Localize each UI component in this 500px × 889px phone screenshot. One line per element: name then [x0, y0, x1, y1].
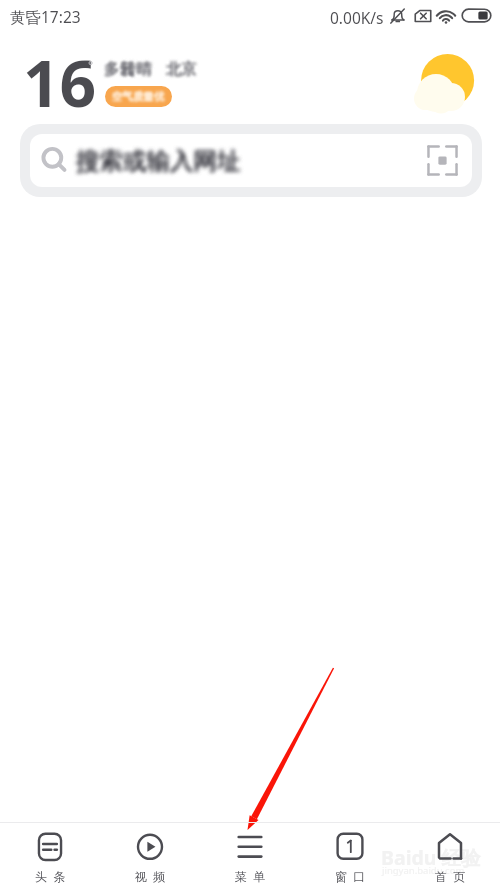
staticText: 头条 — [35, 869, 72, 884]
staticText: 空气质量优 — [112, 90, 165, 103]
staticText: 窗口 — [335, 869, 372, 884]
staticText: 多云 — [104, 59, 135, 79]
staticText: 北京 — [166, 59, 197, 79]
staticText: 空气质量优 — [112, 90, 165, 103]
staticText: 黄昏17:23 — [10, 6, 81, 27]
staticText: 搜索或输入网址 — [76, 146, 241, 176]
staticText: 北京 — [166, 59, 197, 79]
staticText: jingyan.baidu.com — [382, 864, 465, 877]
button[interactable]: 搜索或输入网址 — [30, 134, 472, 187]
button[interactable]: 视频 — [100, 823, 200, 889]
button[interactable]: 窗口 — [300, 823, 400, 889]
staticText: 16 — [23, 39, 97, 126]
staticText: 0.00K/s — [330, 7, 384, 28]
staticText: 菜单 — [235, 869, 272, 884]
button[interactable]: 空气质量优 — [105, 86, 172, 107]
staticText: Baidu 经验 — [381, 844, 481, 871]
staticText: 搜索或输入网址 — [76, 146, 241, 176]
other: Scan QR code — [426, 144, 459, 177]
button[interactable]: 菜单 — [200, 823, 300, 889]
staticText: 首页 — [435, 869, 472, 884]
staticText: 多云 — [104, 59, 135, 79]
other: Weather — [414, 48, 486, 120]
staticText: 转晴 — [121, 59, 152, 79]
staticText: ° — [88, 57, 94, 73]
button[interactable]: 首页 — [400, 823, 500, 889]
button[interactable]: 头条 — [0, 823, 100, 889]
staticText: 视频 — [135, 869, 172, 884]
staticText: 转晴 — [121, 59, 152, 79]
